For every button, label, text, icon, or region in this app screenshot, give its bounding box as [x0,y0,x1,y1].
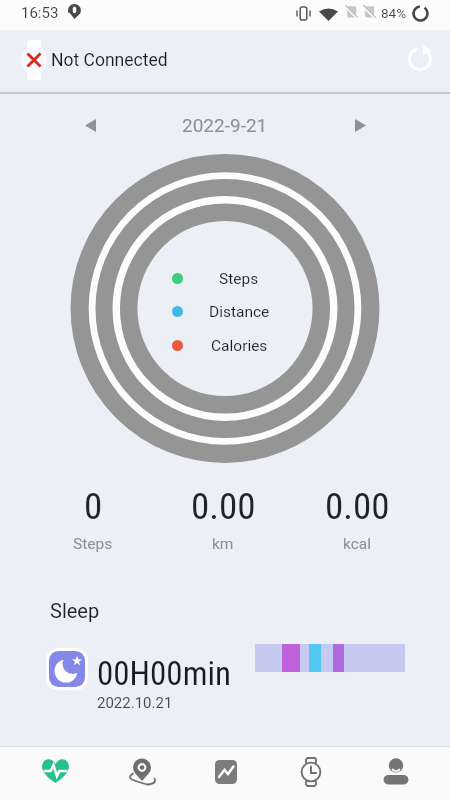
staticText: km [212,535,234,553]
button[interactable] [13,39,55,81]
button[interactable] [98,747,183,800]
staticText: Sleep [50,599,100,622]
button[interactable] [85,119,96,132]
staticText: 2022.10.21 [97,694,173,712]
staticText: 0 [84,485,103,528]
staticText: Steps [73,535,113,553]
button[interactable] [403,42,437,76]
button[interactable] [355,119,366,132]
staticText: 0.00 [191,485,256,528]
staticText: Steps [219,270,259,288]
staticText: 00H00min [97,654,232,693]
staticText: kcal [343,535,372,553]
staticText: 2022-9-21 [182,114,268,136]
button[interactable] [183,747,268,800]
staticText: Not Connected [51,50,168,71]
staticText: 16:53 [21,4,59,22]
button[interactable] [353,747,438,800]
staticText: 0.00 [325,485,390,528]
staticText: Calories [211,337,268,355]
staticText: 84% [381,5,407,21]
staticText: Distance [209,303,270,321]
button[interactable] [12,747,98,800]
button[interactable] [46,648,88,690]
button[interactable] [268,747,353,800]
